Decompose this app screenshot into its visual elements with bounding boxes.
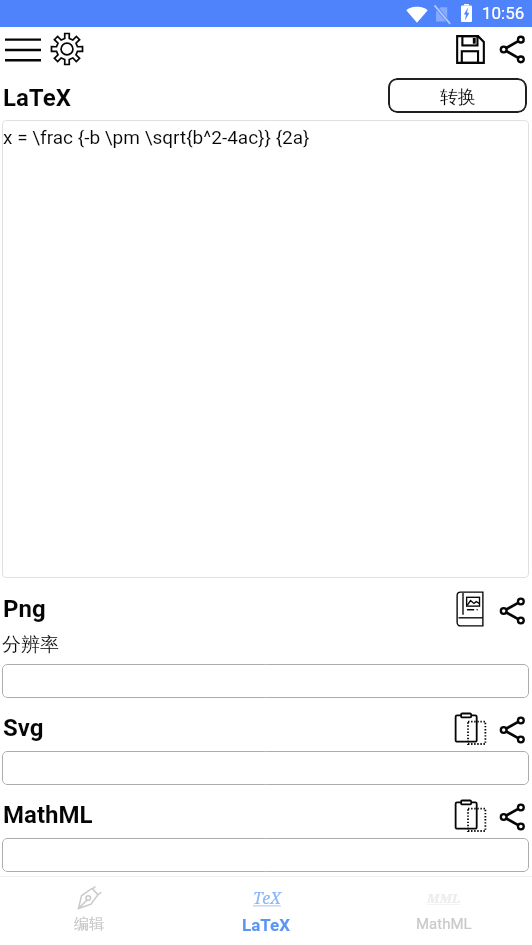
staticText: LaTeX (3, 84, 71, 112)
button[interactable] (2, 838, 529, 872)
button[interactable]: Save (450, 30, 491, 69)
staticText: MathML (416, 915, 472, 933)
button[interactable]: Settings (47, 29, 87, 69)
button[interactable]: Share (492, 30, 532, 69)
button[interactable]: MML (355, 877, 532, 945)
staticText: TeX (253, 887, 281, 909)
staticText: 转换 (440, 86, 476, 109)
button[interactable]: Share (492, 797, 532, 836)
staticText: Png (3, 595, 46, 623)
staticText: MML (427, 889, 461, 907)
button[interactable]: 转换 (388, 78, 527, 113)
staticText: x = \frac {-b \pm \sqrt{b^2-4ac}} {2a} (3, 126, 310, 148)
button[interactable]: Menu (0, 28, 50, 72)
button[interactable]: Copy (448, 590, 489, 629)
button[interactable]: Share (492, 710, 532, 749)
staticText: 10:56 (482, 3, 525, 23)
button[interactable] (2, 751, 529, 785)
button[interactable]: Copy (448, 796, 489, 835)
button[interactable]: 编辑 (0, 877, 178, 945)
staticText: LaTeX (242, 915, 291, 935)
staticText: Svg (3, 714, 44, 742)
button[interactable]: x = \frac {-b \pm \sqrt{b^2-4ac}} {2a} (2, 120, 529, 578)
button[interactable]: TeX (178, 877, 355, 945)
staticText: 分辨率 (2, 633, 59, 657)
staticText: 编辑 (74, 915, 104, 934)
button[interactable]: Copy (448, 709, 489, 748)
staticText: MathML (3, 801, 93, 829)
button[interactable] (2, 664, 529, 698)
button[interactable]: Share (492, 591, 532, 630)
